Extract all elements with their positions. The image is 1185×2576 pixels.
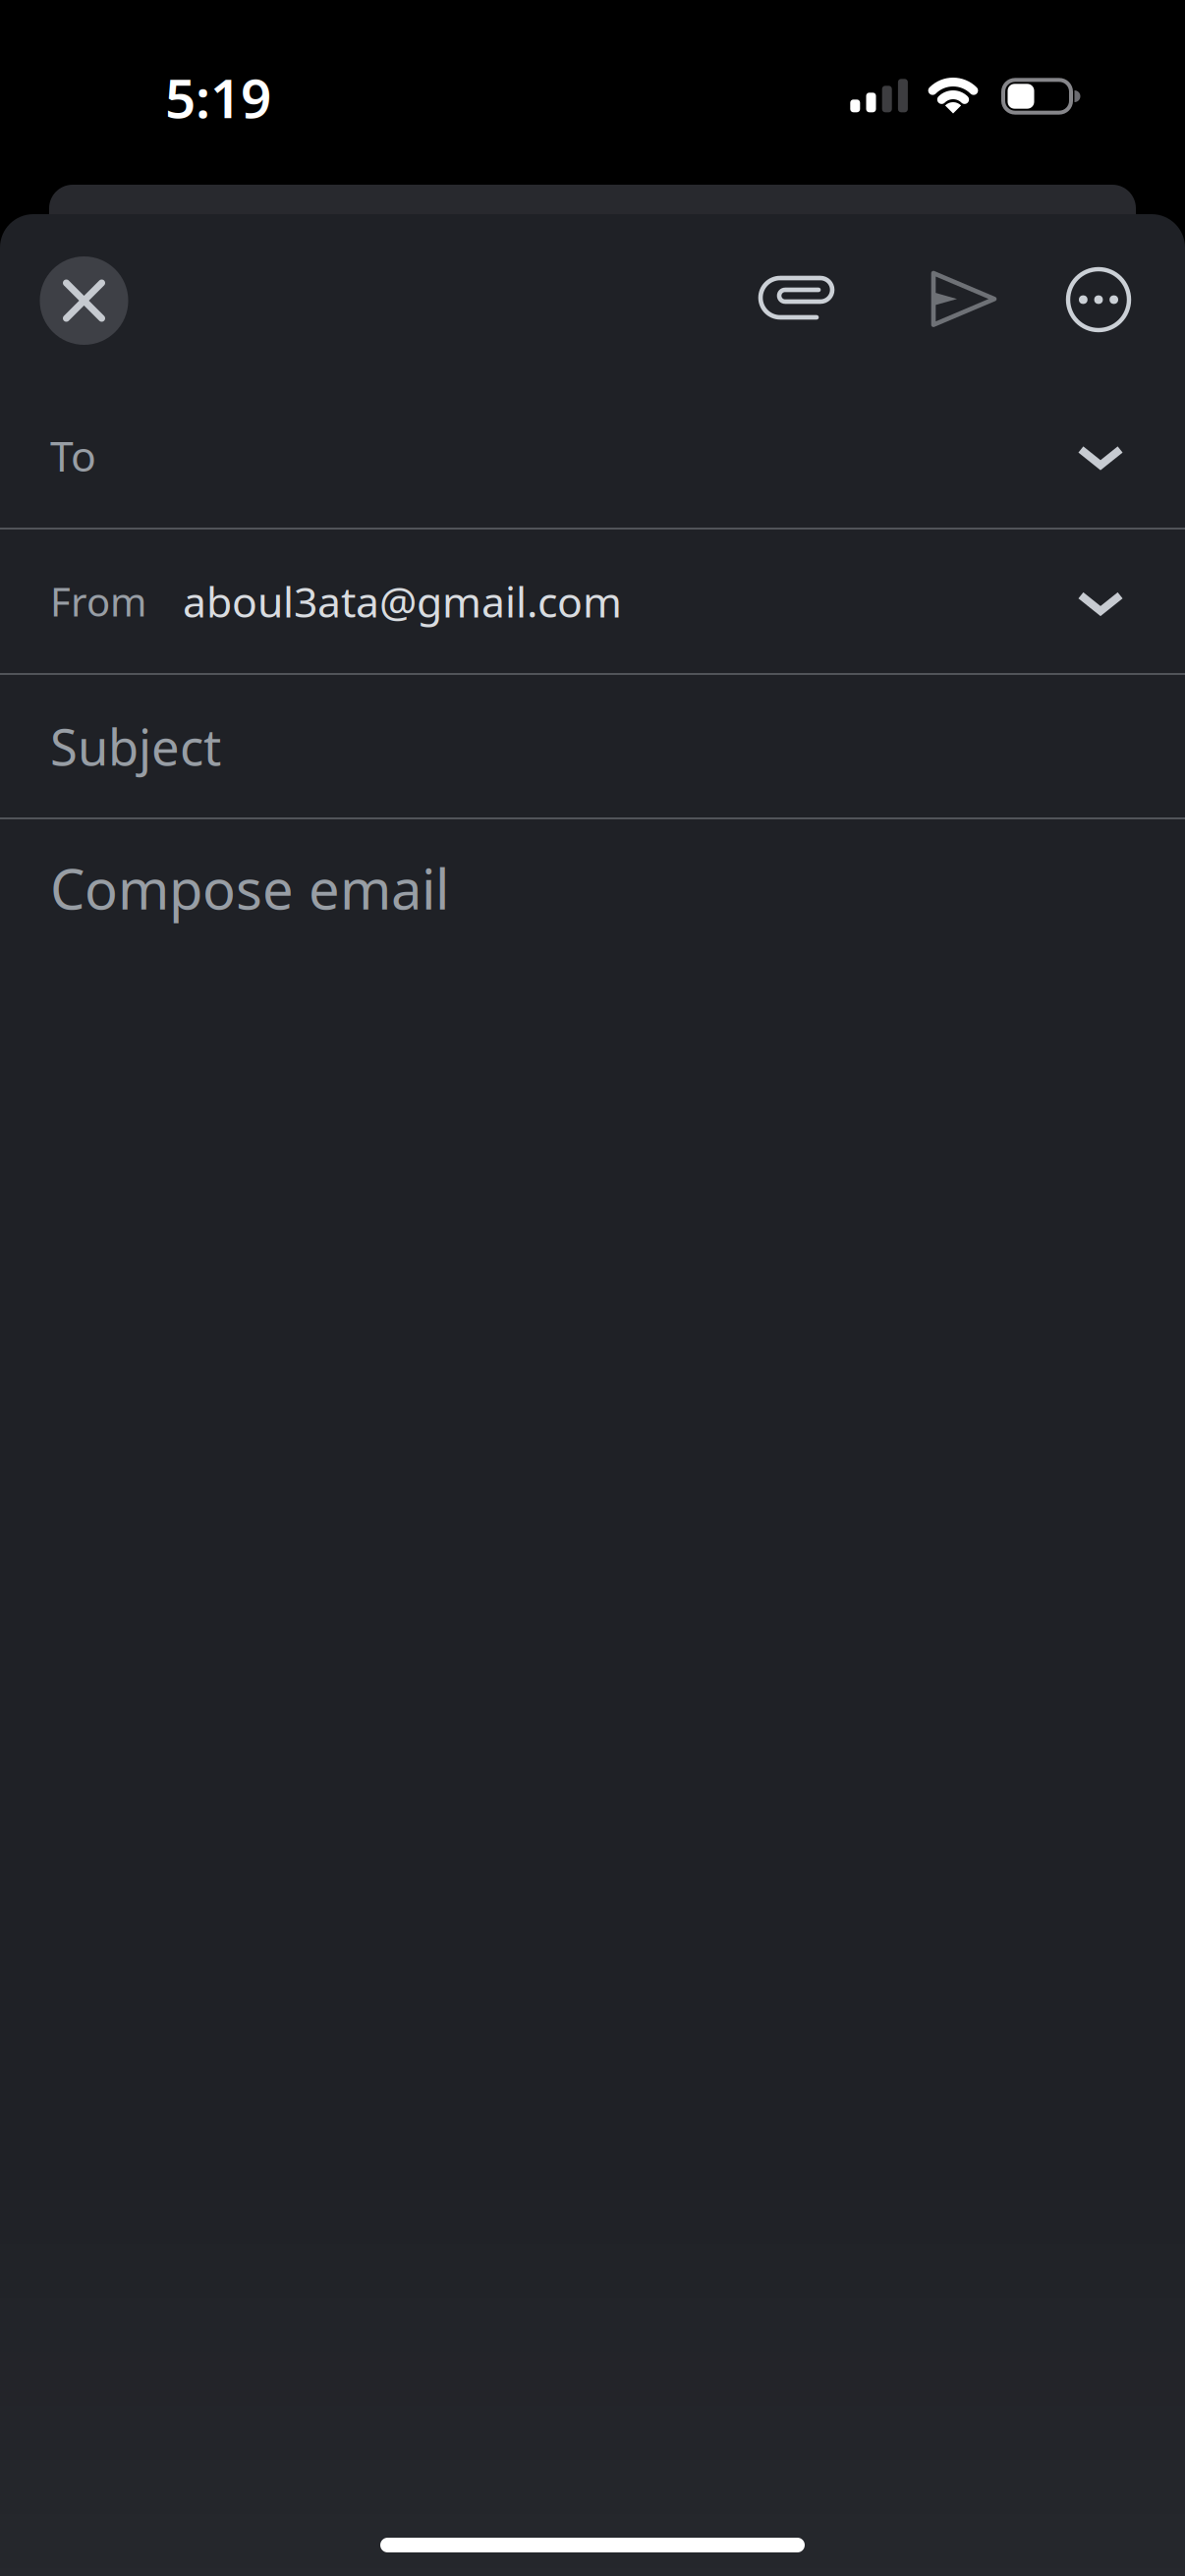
- button[interactable]: More options: [1064, 265, 1133, 334]
- button[interactable]: Subject: [0, 675, 1185, 817]
- button[interactable]: Attach file: [757, 267, 835, 328]
- staticText: aboul3ata@gmail.com: [183, 573, 622, 629]
- button[interactable]: Compose email: [0, 819, 1185, 957]
- button[interactable]: Close: [40, 256, 128, 345]
- button[interactable]: To: [0, 383, 1185, 528]
- staticText: To: [50, 428, 96, 483]
- staticText: From: [50, 575, 146, 627]
- staticText: 5:19: [165, 62, 271, 133]
- button[interactable]: From: [0, 530, 1185, 673]
- button[interactable]: Send: [919, 264, 999, 333]
- staticText: Compose email: [50, 852, 449, 925]
- staticText: Subject: [50, 713, 221, 779]
